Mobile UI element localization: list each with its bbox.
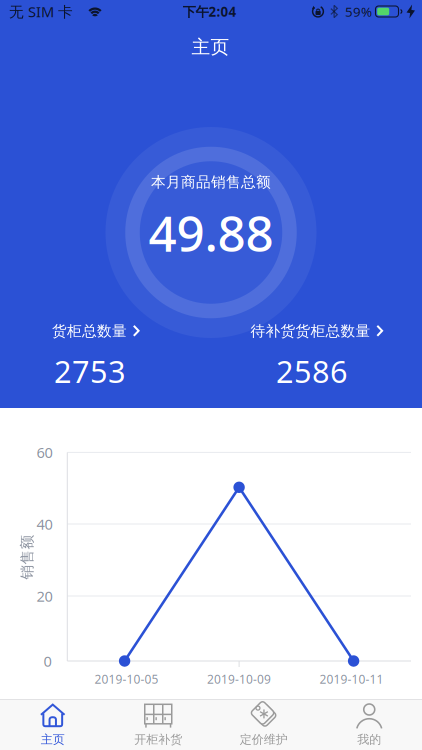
staticText: 49.88	[148, 200, 273, 265]
staticText: 定价维护	[240, 732, 288, 747]
button[interactable]: 待补货货柜总数量	[247, 316, 387, 386]
button[interactable]: 货柜总数量	[52, 316, 148, 386]
staticText: 2019-10-09	[207, 671, 271, 687]
button[interactable]: 我的	[316, 700, 422, 750]
staticText: 2586	[276, 351, 348, 391]
staticText: 我的	[357, 732, 381, 747]
staticText: 开柜补货	[134, 732, 182, 747]
staticText: 2019-10-11	[320, 671, 384, 687]
staticText: 本月商品销售总额	[151, 173, 271, 191]
staticText: 待补货货柜总数量	[250, 322, 370, 340]
staticText: 2019-10-05	[95, 671, 159, 687]
staticText: 59%	[345, 3, 372, 20]
button[interactable]: 主页	[0, 700, 105, 750]
staticText: 0	[43, 651, 51, 671]
staticText: 货柜总数量	[52, 322, 127, 340]
button[interactable]: 定价维护	[211, 700, 316, 750]
button[interactable]: 开柜补货	[105, 700, 211, 750]
staticText: 主页	[191, 35, 229, 58]
staticText: 主页	[41, 732, 65, 747]
staticText: 60	[36, 443, 52, 462]
staticText: 无 SIM 卡	[9, 2, 73, 21]
staticText: 2753	[54, 351, 126, 391]
staticText: 下午2:04	[182, 3, 236, 20]
staticText: 20	[36, 586, 52, 606]
staticText: 销售额	[4, 548, 49, 566]
staticText: 40	[36, 514, 52, 534]
